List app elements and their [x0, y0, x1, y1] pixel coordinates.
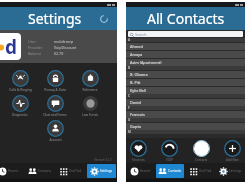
staticText: VoipDiscount: [54, 45, 77, 50]
button[interactable]: Daniel: [126, 99, 245, 106]
staticText: Amaya: [130, 52, 143, 57]
staticText: Francois: [130, 112, 145, 117]
button[interactable]: Reference: [77, 70, 103, 92]
staticText: Settings: [229, 169, 242, 173]
button[interactable]: Calls & Ringing: [7, 70, 33, 92]
staticText: G: [128, 118, 131, 122]
staticText: A: [128, 38, 130, 42]
staticText: Contacts: [168, 169, 182, 173]
staticText: Reference: [82, 88, 98, 92]
staticText: Dial Pad: [69, 169, 82, 173]
button[interactable]: B. Pitt: [126, 79, 245, 86]
staticText: VOIP: [166, 158, 173, 162]
staticText: F: [128, 106, 130, 110]
staticText: Recent: [8, 169, 19, 173]
staticText: C: [128, 94, 130, 98]
button[interactable]: Settings: [87, 164, 116, 178]
staticText: B. Pitt: [130, 80, 141, 85]
button[interactable]: Refresh: [97, 12, 111, 26]
staticText: Daniel: [130, 100, 142, 105]
staticText: Provider: [28, 45, 54, 50]
button[interactable]: Favorites: [130, 140, 147, 162]
staticText: All Contacts: [147, 9, 225, 28]
staticText: Favorites: [132, 158, 145, 162]
staticText: Add New: [226, 158, 239, 162]
button[interactable]: Recent: [127, 164, 154, 178]
button[interactable]: Add New: [224, 140, 241, 162]
staticText: Balance: [28, 51, 54, 56]
staticText: Ahmed: [130, 44, 143, 49]
staticText: Account: [49, 138, 62, 142]
button[interactable]: B. Obama: [126, 71, 245, 78]
button[interactable]: Provider logo: [0, 33, 21, 60]
button[interactable]: Dial Pad: [186, 164, 214, 178]
staticText: €2.70: [54, 51, 64, 56]
button[interactable]: Privacy & Data: [42, 70, 68, 92]
staticText: Contacts: [38, 169, 52, 173]
staticText: Gupta: [130, 124, 141, 129]
staticText: M: [128, 130, 131, 134]
staticText: User: [28, 39, 54, 44]
staticText: mobilecorp: [54, 39, 74, 44]
button[interactable]: Account: [42, 120, 68, 142]
staticText: Chat and Forms: [43, 113, 67, 117]
staticText: B: [128, 66, 130, 70]
staticText: Diagnostic: [12, 113, 28, 117]
button[interactable]: Dial Pad: [56, 164, 85, 178]
staticText: Asim (Apartment): [130, 60, 162, 65]
staticText: Calls & Ringing: [9, 88, 32, 92]
staticText: Privacy & Data: [44, 88, 66, 92]
button[interactable]: Settings: [216, 164, 244, 178]
staticText: Contacts: [195, 158, 208, 162]
button[interactable]: Ahmed: [126, 43, 245, 50]
button[interactable]: Amaya: [126, 51, 245, 58]
button[interactable]: Diagnostic: [7, 95, 33, 117]
button[interactable]: Chat and Forms: [42, 95, 68, 117]
staticText: d: [5, 34, 18, 60]
button[interactable]: Contacts: [156, 164, 184, 178]
button[interactable]: Recent: [0, 164, 23, 178]
button[interactable]: Gupta: [126, 123, 245, 130]
button[interactable]: Contacts: [25, 164, 54, 178]
button[interactable]: Search: [128, 31, 243, 37]
staticText: Search: [135, 32, 147, 37]
staticText: Kylie Bell: [130, 88, 146, 93]
staticText: Low Funds: [82, 113, 98, 117]
button[interactable]: Contacts: [193, 140, 210, 162]
button[interactable]: Asim (Apartment): [126, 59, 245, 66]
staticText: Settings: [28, 9, 82, 28]
staticText: Settings: [100, 169, 113, 173]
staticText: Recent: [140, 169, 151, 173]
button[interactable]: VOIP: [161, 140, 178, 162]
staticText: B. Obama: [130, 72, 148, 77]
staticText: Dial Pad: [199, 169, 212, 173]
staticText: Version 3.2.1: [94, 158, 113, 162]
button[interactable]: Low Funds: [77, 95, 103, 117]
button[interactable]: Francois: [126, 111, 245, 118]
button[interactable]: Kylie Bell: [126, 87, 245, 94]
